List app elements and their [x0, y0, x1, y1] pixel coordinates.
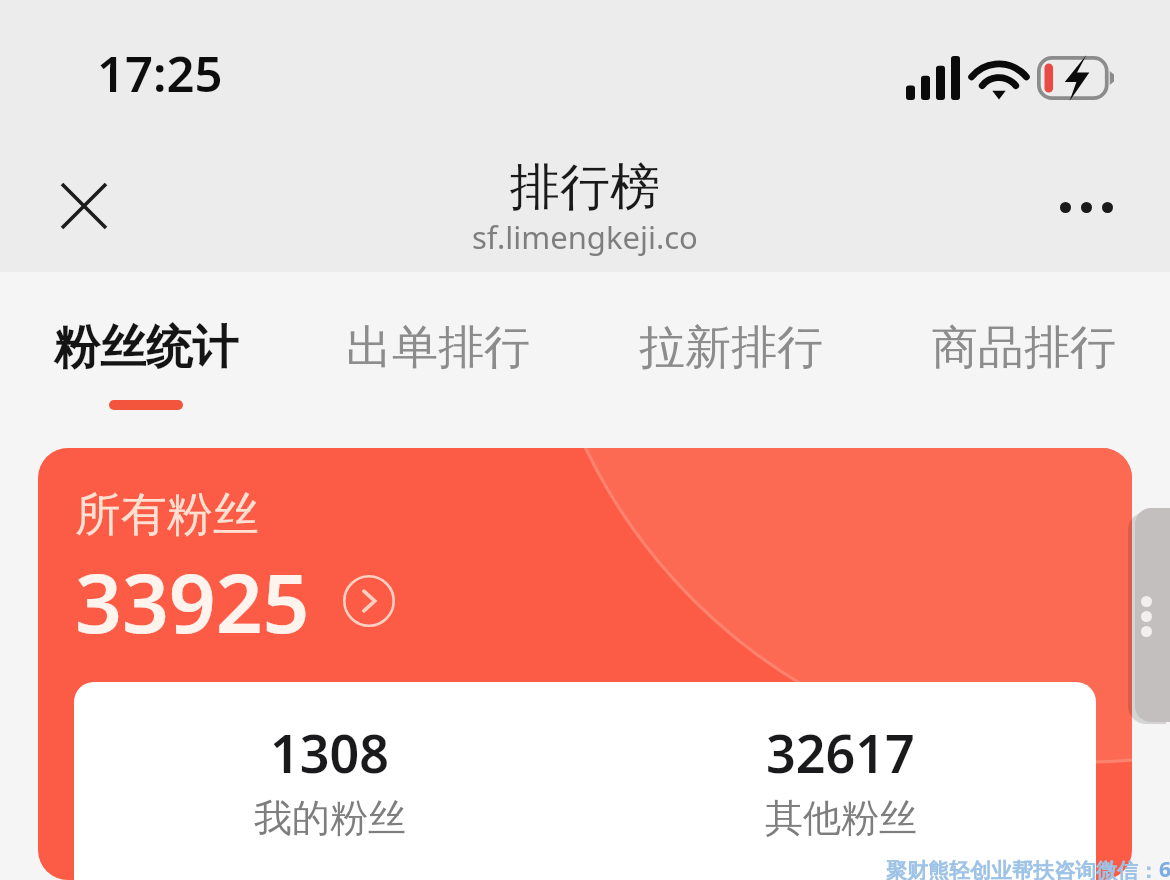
staticText: 聚财熊轻创业帮扶咨询微信： [886, 858, 1159, 880]
button[interactable]: View all fans [341, 573, 397, 629]
staticText: 17:25 [97, 40, 223, 107]
button[interactable]: 拉新排行 [584, 272, 877, 412]
staticText: 所有粉丝 [75, 486, 259, 544]
button[interactable]: More options [1044, 165, 1128, 249]
button[interactable]: Close [44, 166, 124, 246]
staticText: 我的粉丝 [254, 794, 406, 842]
staticText: 拉新排行 [639, 319, 823, 377]
staticText: 33925 [75, 545, 310, 657]
staticText: 商品排行 [932, 319, 1116, 377]
button[interactable]: 32617 [585, 682, 1096, 880]
staticText: 625177219 [1159, 855, 1170, 880]
staticText: 出单排行 [346, 319, 530, 377]
staticText: 排行榜 [510, 156, 660, 219]
staticText: sf.limengkeji.co [472, 216, 698, 258]
button[interactable]: 1308 [74, 682, 585, 880]
button[interactable]: 粉丝统计 [0, 272, 292, 412]
staticText: 32617 [766, 717, 915, 788]
staticText: 粉丝统计 [54, 319, 238, 377]
staticText: 其他粉丝 [765, 794, 917, 842]
staticText: 1308 [270, 717, 389, 788]
button[interactable]: Mini program menu [1135, 508, 1170, 722]
button[interactable]: 出单排行 [292, 272, 584, 412]
button[interactable]: 商品排行 [877, 272, 1170, 412]
